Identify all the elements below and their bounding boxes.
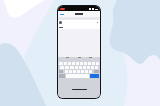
button[interactable] bbox=[58, 20, 100, 25]
button[interactable]: Send bbox=[90, 74, 99, 78]
